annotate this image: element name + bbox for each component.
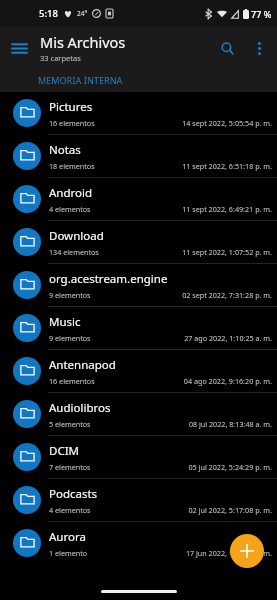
staticText: 18 elementos — [49, 161, 95, 171]
staticText: 16 elementos — [49, 118, 95, 128]
staticText: 02 jul 2022, 5:17:08 p. m. — [188, 505, 272, 515]
button[interactable]: DCIM — [0, 436, 277, 478]
staticText: Mis Archivos — [40, 32, 126, 52]
staticText: 04 ago 2022, 9:16:20 p. m. — [183, 376, 272, 386]
button[interactable]: Más opciones — [244, 33, 274, 63]
staticText: Music — [49, 314, 81, 330]
staticText: 27 ago 2022, 1:10:25 a. m. — [184, 333, 272, 343]
staticText: 17 jun 2022, 1:45:18 p. m. — [185, 548, 272, 558]
staticText: 11 sept 2022, 6:49:21 p. m. — [182, 204, 272, 214]
button[interactable]: MEMORIA INTERNA — [0, 68, 277, 92]
button[interactable]: Notas — [0, 135, 277, 177]
staticText: MEMORIA INTERNA — [38, 74, 123, 86]
button[interactable]: Android — [0, 178, 277, 220]
button[interactable]: org.acestream.engine — [0, 264, 277, 306]
staticText: Pictures — [49, 99, 93, 115]
button[interactable]: Buscar — [210, 31, 244, 65]
staticText: 1 elemento — [49, 548, 88, 558]
staticText: Notas — [49, 142, 81, 158]
button[interactable]: Pictures — [0, 92, 277, 134]
staticText: 16 elementos — [49, 376, 95, 386]
staticText: 9 elementos — [49, 333, 91, 343]
button[interactable]: Aurora — [0, 522, 277, 564]
staticText: 5:18 — [39, 7, 58, 20]
staticText: 05 jul 2022, 5:24:29 p. m. — [188, 462, 272, 472]
staticText: 11 sept 2022, 6:51:18 p. m. — [182, 161, 272, 171]
button[interactable]: Añadir — [230, 534, 264, 568]
staticText: 11 sept 2022, 1:07:52 p. m. — [182, 247, 272, 257]
button[interactable]: Audiolibros — [0, 393, 277, 435]
staticText: 4 elementos — [49, 204, 91, 214]
staticText: Antennapod — [49, 357, 116, 373]
staticText: 7 elementos — [49, 462, 91, 472]
staticText: Podcasts — [49, 486, 98, 502]
staticText: 4 elementos — [49, 505, 91, 515]
button[interactable]: Menú — [0, 29, 38, 67]
staticText: 24° — [77, 9, 88, 18]
button[interactable]: Antennapod — [0, 350, 277, 392]
staticText: Aurora — [49, 529, 86, 545]
staticText: DCIM — [49, 443, 79, 459]
staticText: 9 elementos — [49, 290, 91, 300]
staticText: org.acestream.engine — [49, 271, 168, 287]
staticText: 14 sept 2022, 5:05:54 p. m. — [182, 118, 272, 128]
staticText: Download — [49, 228, 104, 244]
button[interactable]: Podcasts — [0, 479, 277, 521]
staticText: 5 elementos — [49, 419, 91, 429]
staticText: 02 sept 2022, 7:31:28 p. m. — [182, 290, 272, 300]
staticText: 77 % — [251, 8, 272, 20]
button[interactable]: Download — [0, 221, 277, 263]
staticText: Android — [49, 185, 93, 201]
button[interactable]: Music — [0, 307, 277, 349]
staticText: 134 elementos — [49, 247, 99, 257]
staticText: 33 carpetas — [40, 53, 81, 63]
staticText: Audiolibros — [49, 400, 111, 416]
staticText: 08 jul 2022, 8:13:48 a. m. — [188, 419, 272, 429]
